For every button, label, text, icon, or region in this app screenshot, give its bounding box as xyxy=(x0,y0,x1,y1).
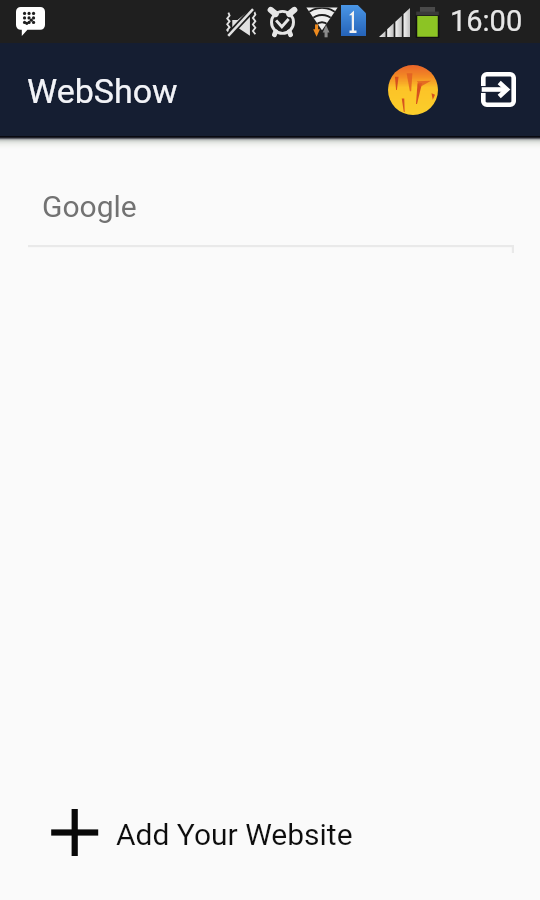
button[interactable]: WebShow account xyxy=(369,43,456,136)
staticText: Google xyxy=(42,189,137,224)
staticText: 16:00 xyxy=(450,4,523,38)
button[interactable]: Login xyxy=(457,43,540,136)
staticText: WebShow xyxy=(27,71,178,111)
button[interactable]: Add Your Website xyxy=(0,776,540,900)
button[interactable]: Google xyxy=(0,149,540,258)
staticText: Add Your Website xyxy=(116,817,353,852)
